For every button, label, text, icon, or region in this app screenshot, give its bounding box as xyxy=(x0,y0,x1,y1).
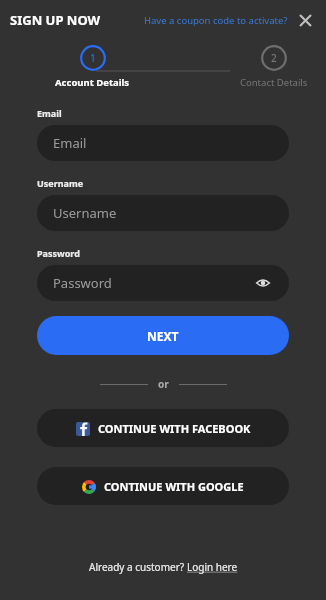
staticText: Contact Details xyxy=(240,76,308,89)
staticText: Account Details xyxy=(55,76,130,89)
button[interactable]: CONTINUE WITH GOOGLE xyxy=(37,467,289,505)
staticText: NEXT xyxy=(147,328,179,344)
button[interactable]: 2 xyxy=(240,45,308,89)
button[interactable]: NEXT xyxy=(37,316,289,355)
button[interactable]: Login here xyxy=(187,560,238,574)
staticText: Username xyxy=(53,204,117,222)
button[interactable]: Close xyxy=(294,9,316,31)
staticText: CONTINUE WITH GOOGLE xyxy=(104,479,244,494)
staticText: Have a coupon code to activate? xyxy=(144,14,288,27)
staticText: 2 xyxy=(271,51,277,65)
staticText: SIGN UP NOW xyxy=(10,11,101,29)
staticText: CONTINUE WITH FACEBOOK xyxy=(98,421,251,436)
staticText: Login here xyxy=(187,560,238,574)
staticText: Already a customer? xyxy=(89,560,187,574)
staticText: Password xyxy=(53,274,112,292)
staticText: Email xyxy=(37,107,62,119)
button[interactable]: Have a coupon code to activate? xyxy=(144,14,288,27)
staticText: Email xyxy=(53,134,87,152)
staticText: Username xyxy=(37,177,84,189)
button[interactable]: Show password xyxy=(253,273,273,293)
button[interactable]: CONTINUE WITH FACEBOOK xyxy=(37,409,289,447)
button[interactable]: Email xyxy=(37,125,289,161)
button[interactable]: 1 xyxy=(55,45,130,89)
button[interactable]: Password xyxy=(37,265,289,301)
staticText: 1 xyxy=(90,51,96,65)
staticText: or xyxy=(158,377,169,391)
button[interactable]: Username xyxy=(37,195,289,231)
staticText: Password xyxy=(37,247,80,259)
